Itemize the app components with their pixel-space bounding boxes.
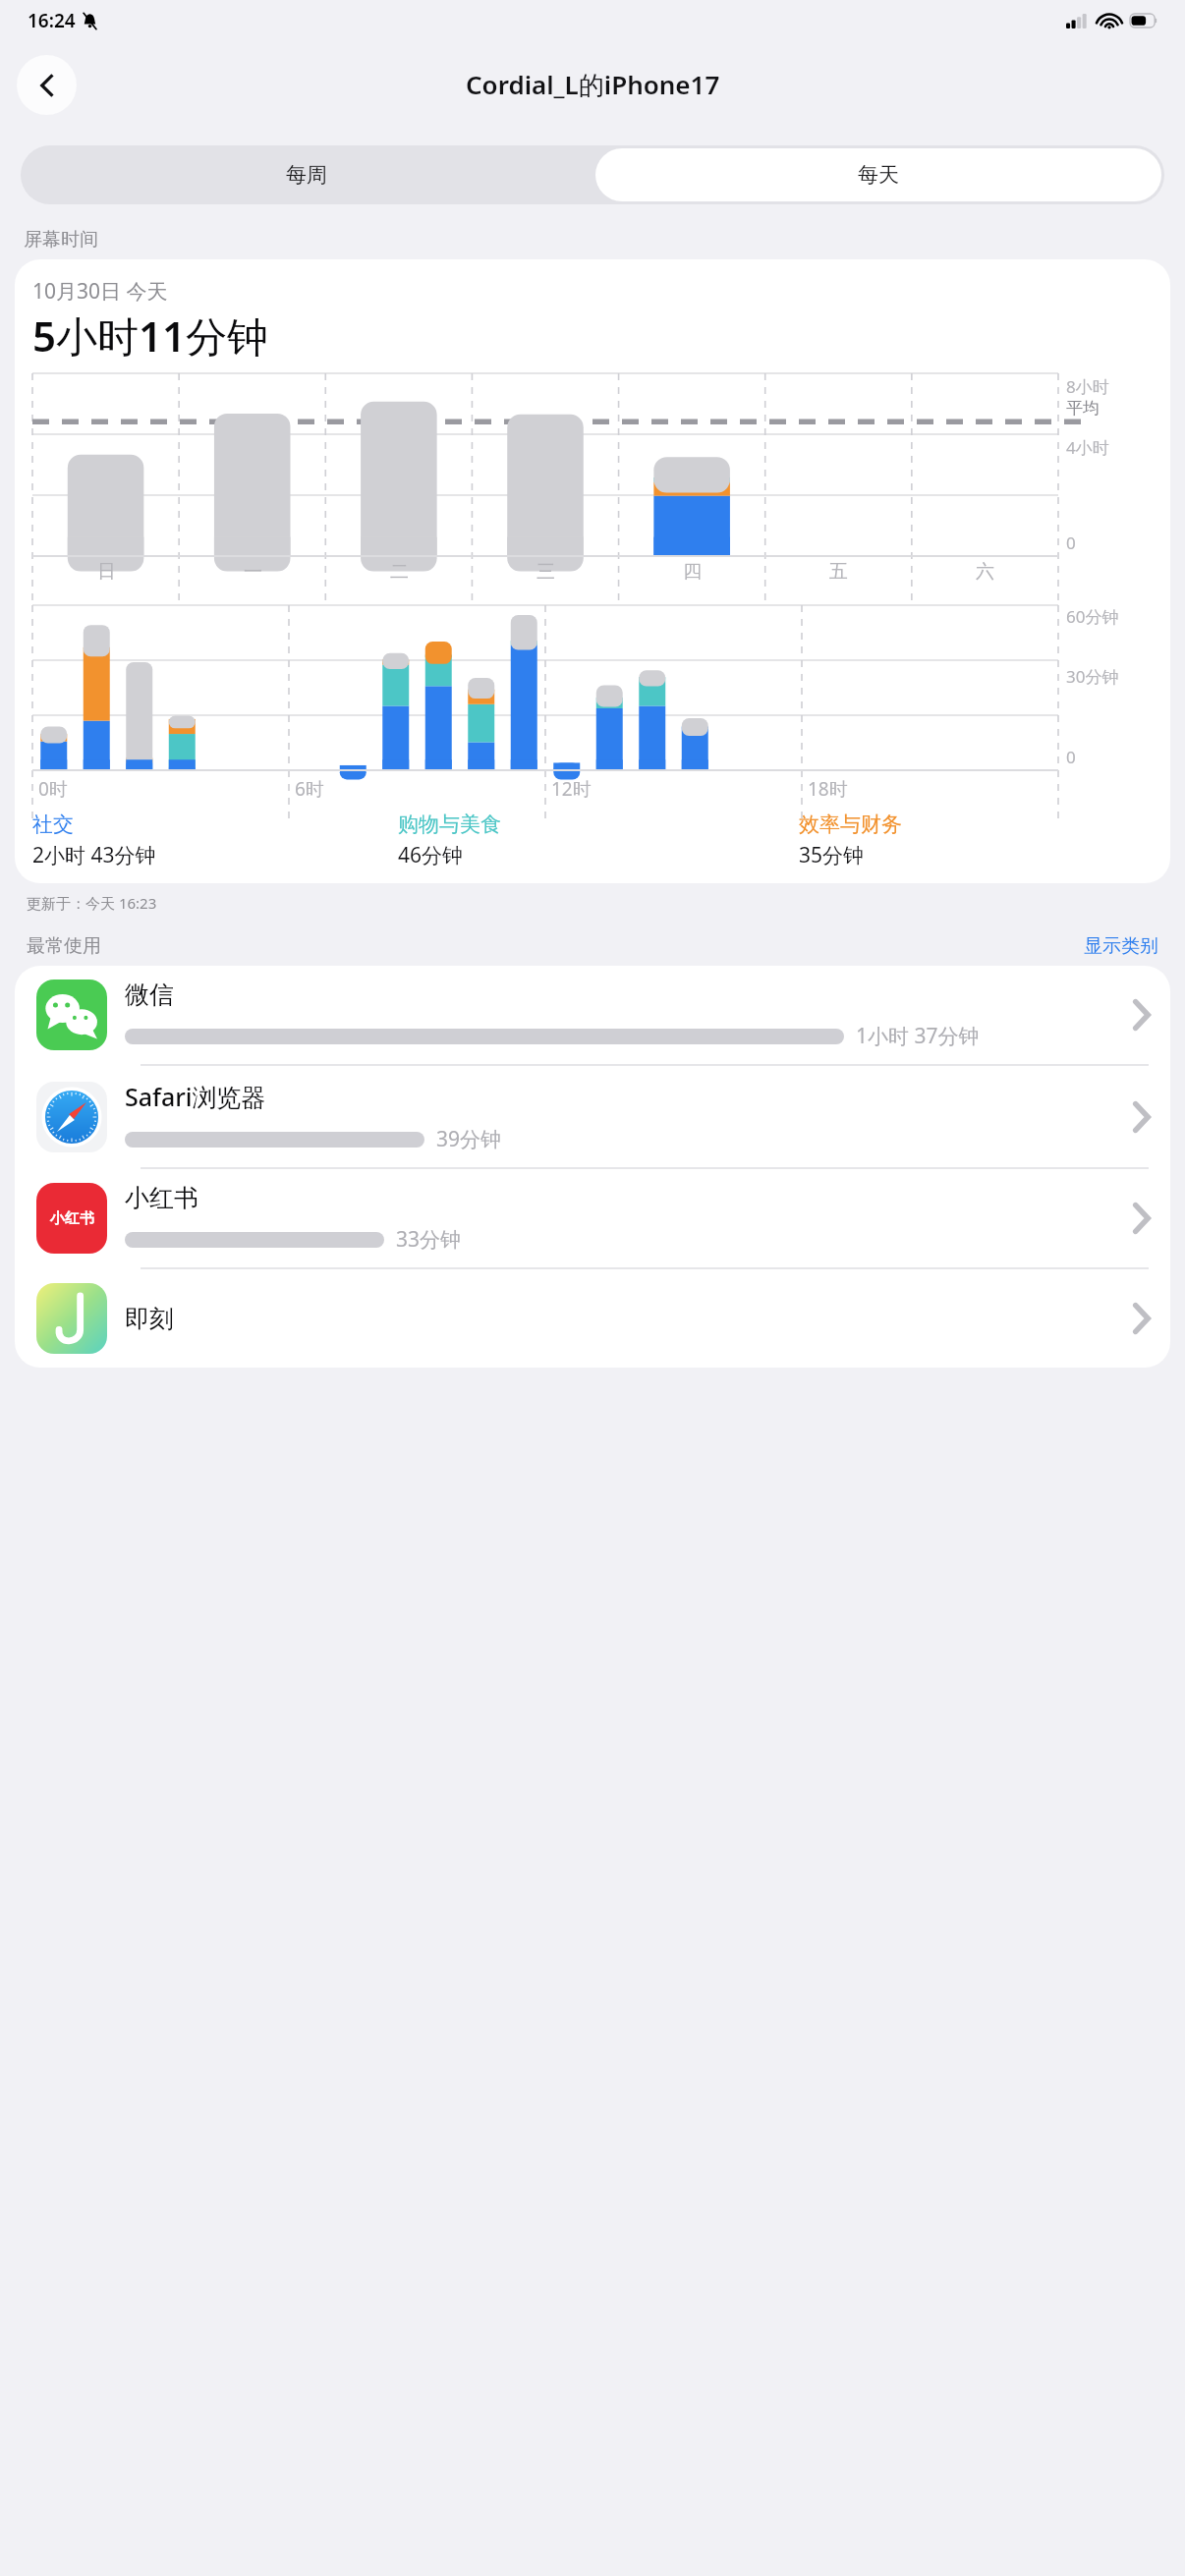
staticText: 即刻 (125, 1304, 174, 1334)
staticText: 35分钟 (799, 841, 865, 869)
staticText: 社交 (32, 812, 74, 837)
staticText: 10月30日 今天 (32, 277, 168, 306)
button[interactable]: 即刻 (15, 1269, 1170, 1368)
staticText: Safari浏览器 (125, 1080, 266, 1113)
button[interactable]: 效率与财务 (799, 812, 1147, 869)
button[interactable]: Safari浏览器 (15, 1066, 1170, 1167)
staticText: 0时 (38, 776, 68, 802)
staticText: 微信 (125, 980, 174, 1010)
staticText: 显示类别 (1084, 934, 1158, 958)
staticText: 购物与美食 (398, 812, 501, 837)
staticText: 四 (683, 560, 702, 584)
staticText: 更新于：今天 16:23 (27, 893, 157, 913)
staticText: 屏幕时间 (24, 228, 98, 252)
button[interactable]: 购物与美食 (398, 812, 799, 869)
button[interactable]: 微信 (15, 966, 1170, 1064)
button[interactable]: 小红书 (15, 1169, 1170, 1267)
staticText: 效率与财务 (799, 812, 902, 837)
staticText: 0 (1066, 532, 1076, 554)
staticText: Cordial_L的iPhone17 (466, 67, 720, 102)
staticText: 日 (97, 560, 116, 584)
staticText: 6时 (295, 776, 324, 802)
staticText: 60分钟 (1066, 605, 1119, 628)
staticText: 39分钟 (436, 1125, 502, 1153)
staticText: 18时 (808, 776, 848, 802)
button[interactable]: 每天 (595, 148, 1161, 201)
staticText: 8小时 (1066, 375, 1109, 398)
staticText: 0 (1066, 746, 1076, 768)
staticText: 每周 (286, 162, 327, 188)
staticText: 小红书 (125, 1183, 198, 1213)
staticText: 平均 (1066, 398, 1100, 419)
button[interactable]: 返回 (17, 55, 77, 115)
staticText: 每天 (858, 162, 899, 188)
staticText: 三 (536, 560, 555, 584)
staticText: 最常使用 (27, 934, 101, 958)
staticText: 1小时 37分钟 (856, 1022, 980, 1050)
button[interactable]: 社交 (32, 812, 398, 869)
button[interactable]: 10月30日 今天 (15, 259, 1170, 883)
staticText: 4小时 (1066, 436, 1109, 459)
button[interactable]: 显示类别 (1084, 934, 1158, 958)
staticText: 2小时 43分钟 (32, 841, 156, 869)
staticText: 五 (829, 560, 848, 584)
staticText: 二 (390, 560, 409, 584)
staticText: 小红书 (50, 1209, 94, 1228)
staticText: 一 (244, 560, 262, 584)
staticText: 16:24 (28, 8, 76, 33)
staticText: 5小时11分钟 (32, 308, 269, 364)
staticText: 33分钟 (396, 1225, 462, 1254)
staticText: 46分钟 (398, 841, 464, 869)
button[interactable]: 每周 (21, 145, 592, 204)
staticText: 12时 (551, 776, 592, 802)
staticText: 六 (976, 560, 994, 584)
staticText: 30分钟 (1066, 665, 1119, 688)
